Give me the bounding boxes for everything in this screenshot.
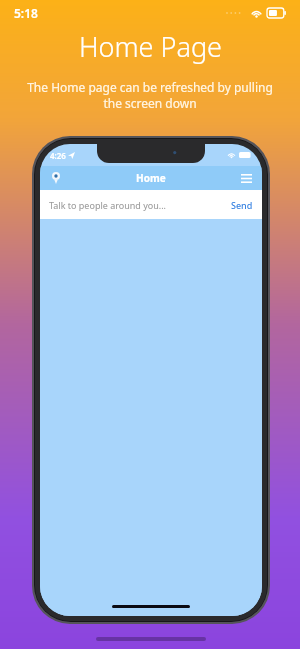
staticText: 4:26 <box>50 150 66 161</box>
button[interactable]: Menu <box>238 170 254 186</box>
staticText: Home Page <box>79 28 222 65</box>
staticText: Send <box>231 199 253 211</box>
staticText: Home <box>136 171 166 185</box>
staticText: Talk to people around you... <box>49 199 167 211</box>
staticText: 5:18 <box>14 5 38 21</box>
button[interactable]: Send <box>231 199 253 211</box>
button[interactable]: Talk to people around you... <box>40 190 262 219</box>
button[interactable]: Location <box>48 170 64 186</box>
staticText: The Home page can be refreshed by pullin… <box>27 79 273 111</box>
